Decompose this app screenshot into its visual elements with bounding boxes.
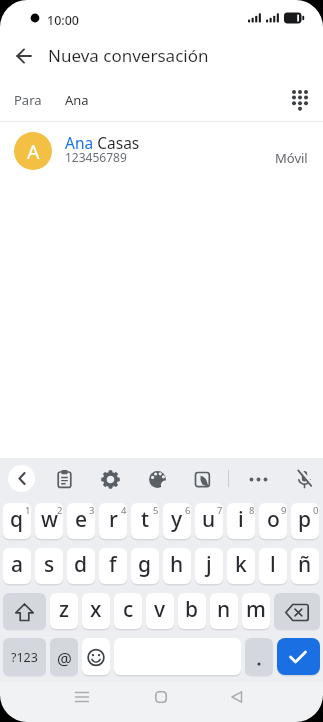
staticText: 10:00 xyxy=(47,12,80,29)
button[interactable]: m xyxy=(242,593,270,629)
staticText: Para xyxy=(14,91,42,109)
button[interactable] xyxy=(278,79,322,121)
staticText: 5 xyxy=(153,504,159,517)
staticText: v xyxy=(154,595,166,624)
staticText: r xyxy=(109,505,118,534)
button[interactable]: x xyxy=(82,593,110,629)
staticText: 9 xyxy=(281,504,287,517)
staticText: 1 xyxy=(25,504,31,517)
button[interactable]: h xyxy=(163,548,191,584)
button[interactable]: A xyxy=(0,122,323,179)
button[interactable]: n xyxy=(210,593,238,629)
button[interactable]: g xyxy=(131,548,159,584)
staticText: x xyxy=(90,595,102,624)
staticText: i xyxy=(238,505,244,534)
button[interactable]: b xyxy=(178,593,206,629)
staticText: Ana Casas xyxy=(65,132,140,153)
button[interactable] xyxy=(67,682,97,712)
staticText: z xyxy=(59,595,70,624)
staticText: t xyxy=(141,505,150,534)
staticText: Nueva conversación xyxy=(48,44,209,67)
staticText: s xyxy=(44,550,55,579)
staticText: b xyxy=(185,595,199,624)
staticText: 0 xyxy=(313,504,319,517)
button[interactable] xyxy=(146,682,176,712)
button[interactable]: r xyxy=(99,503,127,539)
button[interactable]: o xyxy=(259,503,287,539)
button[interactable]: a xyxy=(3,548,31,584)
button[interactable]: z xyxy=(50,593,78,629)
staticText: c xyxy=(123,595,134,624)
button[interactable]: w xyxy=(35,503,63,539)
staticText: ?123 xyxy=(11,649,38,666)
staticText: m xyxy=(246,595,266,624)
staticText: a xyxy=(11,550,24,579)
button[interactable] xyxy=(8,465,35,492)
button[interactable]: e xyxy=(67,503,95,539)
button[interactable] xyxy=(222,682,252,712)
button[interactable]: d xyxy=(67,548,95,584)
staticText: h xyxy=(170,550,184,579)
button[interactable]: u xyxy=(195,503,223,539)
staticText: n xyxy=(217,595,231,624)
button[interactable]: Para xyxy=(0,75,323,121)
staticText: y xyxy=(171,505,183,534)
button[interactable] xyxy=(8,40,40,72)
button[interactable]: t xyxy=(131,503,159,539)
staticText: o xyxy=(267,505,280,534)
staticText: 4 xyxy=(121,504,127,517)
button[interactable] xyxy=(82,638,110,675)
button[interactable]: i xyxy=(227,503,255,539)
staticText: g xyxy=(138,550,152,579)
staticText: 8 xyxy=(249,504,255,517)
button[interactable]: c xyxy=(114,593,142,629)
button[interactable]: v xyxy=(146,593,174,629)
button[interactable]: ñ xyxy=(291,548,319,584)
staticText: q xyxy=(10,505,24,534)
button[interactable]: ?123 xyxy=(3,638,46,675)
staticText: u xyxy=(202,505,216,534)
staticText: w xyxy=(41,505,58,534)
button[interactable] xyxy=(142,464,173,495)
staticText: 2 xyxy=(57,504,63,517)
button[interactable]: q xyxy=(3,503,31,539)
button[interactable] xyxy=(243,464,274,495)
button[interactable] xyxy=(274,593,320,629)
staticText: 6 xyxy=(185,504,191,517)
button[interactable]: y xyxy=(163,503,191,539)
staticText: j xyxy=(206,550,212,579)
button[interactable]: k xyxy=(227,548,255,584)
button[interactable] xyxy=(277,638,320,675)
staticText: e xyxy=(75,505,88,534)
button[interactable] xyxy=(3,593,46,629)
button[interactable]: l xyxy=(259,548,287,584)
staticText: p xyxy=(298,505,312,534)
staticText: f xyxy=(109,550,117,579)
staticText: k xyxy=(235,550,247,579)
staticText: @ xyxy=(57,647,72,669)
button[interactable]: p xyxy=(291,503,319,539)
staticText: 123456789 xyxy=(65,149,127,165)
button[interactable]: s xyxy=(35,548,63,584)
staticText: d xyxy=(74,550,88,579)
staticText: 7 xyxy=(217,504,223,517)
button[interactable] xyxy=(245,638,273,675)
button[interactable]: @ xyxy=(50,638,78,675)
staticText: l xyxy=(270,550,276,579)
staticText: 3 xyxy=(89,504,95,517)
button[interactable] xyxy=(187,464,218,495)
button[interactable] xyxy=(49,464,80,495)
button[interactable] xyxy=(289,464,320,495)
staticText: Ana xyxy=(65,91,89,109)
button[interactable]: j xyxy=(195,548,223,584)
button[interactable] xyxy=(95,464,126,495)
staticText: Móvil xyxy=(275,149,308,167)
staticText: A xyxy=(27,138,40,165)
staticText: ñ xyxy=(298,550,312,579)
button[interactable]: f xyxy=(99,548,127,584)
